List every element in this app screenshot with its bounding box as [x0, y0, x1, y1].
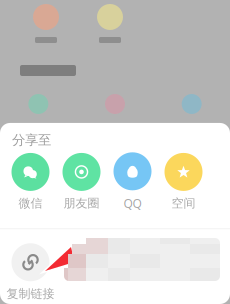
button[interactable]: 空间	[158, 153, 209, 211]
staticText: 复制链接	[6, 286, 54, 301]
button[interactable]: 微信	[5, 153, 56, 211]
staticText: 分享至	[12, 132, 51, 148]
button[interactable]: 朋友圈	[56, 153, 107, 211]
button[interactable]: 复制链接	[5, 243, 56, 301]
staticText: 空间	[171, 196, 195, 211]
button[interactable]: QQ	[107, 152, 158, 211]
staticText: 朋友圈	[63, 196, 99, 211]
staticText: 微信	[18, 196, 42, 211]
staticText: QQ	[123, 195, 141, 211]
